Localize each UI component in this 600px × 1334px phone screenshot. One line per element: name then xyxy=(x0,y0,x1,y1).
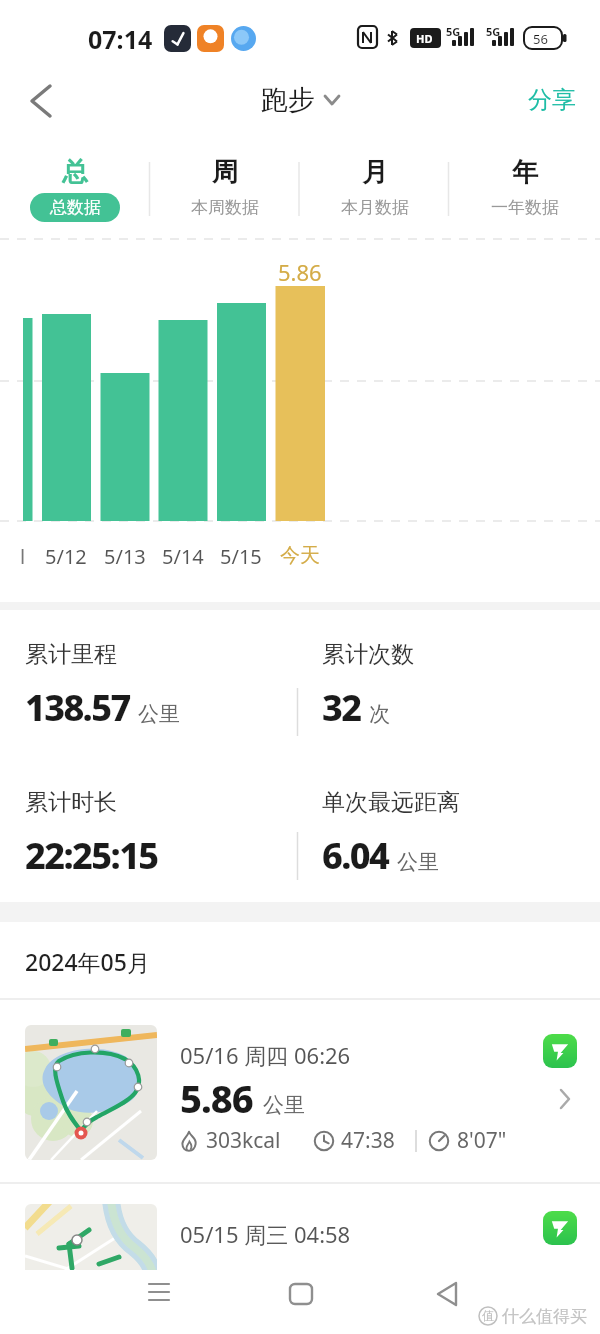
button[interactable] xyxy=(543,1211,577,1245)
button[interactable]: 跑步 xyxy=(261,83,340,117)
staticText: 跑步 xyxy=(261,83,315,117)
button[interactable]: 周 xyxy=(150,150,300,225)
staticText: 47:38 xyxy=(341,1126,395,1155)
button[interactable]: 总 xyxy=(0,150,150,225)
staticText: 8'07" xyxy=(457,1126,507,1155)
staticText: 今天 xyxy=(280,543,320,568)
staticText: 2024年05月 xyxy=(25,946,150,977)
staticText: 年 xyxy=(512,156,538,189)
staticText: 5.86 xyxy=(278,257,322,287)
staticText: 公里 xyxy=(397,849,439,875)
staticText: 05/15 周三 04:58 xyxy=(180,1219,351,1249)
staticText: 总 xyxy=(62,156,88,189)
button[interactable] xyxy=(281,1274,321,1314)
button[interactable]: 分享 xyxy=(528,85,576,115)
button[interactable]: 05/15 周三 04:58 xyxy=(0,1184,600,1270)
staticText: 32 xyxy=(322,683,361,732)
staticText: 5/14 xyxy=(162,543,204,570)
staticText: 303kcal xyxy=(206,1126,281,1155)
staticText: 138.57 xyxy=(25,683,130,732)
button[interactable]: 年 xyxy=(450,150,600,225)
staticText: 值 xyxy=(482,1308,494,1323)
staticText: 累计次数 xyxy=(322,640,414,669)
staticText: 什么值得买 xyxy=(502,1306,587,1327)
button[interactable] xyxy=(14,74,66,126)
staticText: 公里 xyxy=(138,701,180,727)
staticText: 5G xyxy=(486,24,501,39)
staticText: 累计时长 xyxy=(25,788,117,817)
staticText: 56 xyxy=(533,30,548,48)
staticText: 本周数据 xyxy=(191,197,259,218)
staticText: 公里 xyxy=(263,1092,305,1118)
button[interactable] xyxy=(543,1034,577,1068)
staticText: 次 xyxy=(369,701,390,727)
staticText: 总数据 xyxy=(50,197,101,218)
staticText: 6.04 xyxy=(322,831,389,880)
staticText: 周 xyxy=(212,156,238,189)
staticText: 22:25:15 xyxy=(25,831,158,880)
staticText: 05/16 周四 06:26 xyxy=(180,1040,351,1070)
button[interactable] xyxy=(428,1274,468,1314)
button[interactable]: 月 xyxy=(300,150,450,225)
staticText: 5/15 xyxy=(220,543,262,570)
staticText: HD xyxy=(416,31,433,46)
button[interactable]: 05/16 周四 06:26 xyxy=(0,1000,600,1184)
staticText: 5/12 xyxy=(45,543,87,570)
staticText: 分享 xyxy=(528,85,576,115)
staticText: 5.86 xyxy=(180,1072,253,1124)
staticText: 本月数据 xyxy=(341,197,409,218)
button[interactable] xyxy=(139,1274,179,1314)
staticText: 07:14 xyxy=(88,22,153,56)
staticText: l xyxy=(20,543,26,570)
staticText: 5/13 xyxy=(104,543,146,570)
staticText: 月 xyxy=(362,156,388,189)
staticText: 累计里程 xyxy=(25,640,117,669)
staticText: 一年数据 xyxy=(491,197,559,218)
staticText: 单次最远距离 xyxy=(322,788,460,817)
staticText: 5G xyxy=(446,24,461,39)
